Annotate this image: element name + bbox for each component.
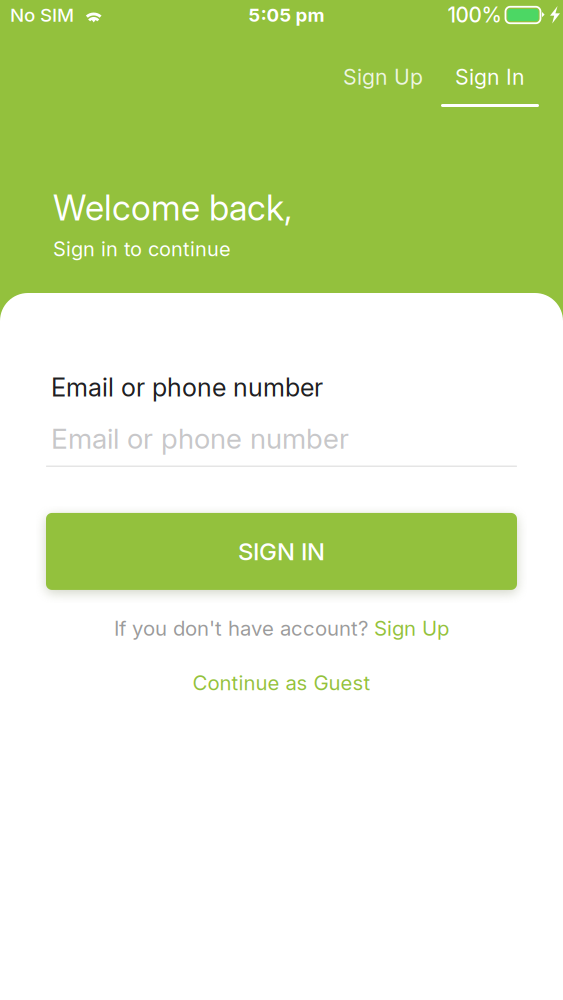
button[interactable]: Sign Up (334, 61, 432, 108)
button[interactable]: Continue as Guest (182, 665, 380, 701)
staticText: Sign Up (343, 64, 423, 90)
staticText: Continue as Guest (192, 671, 370, 695)
staticText: Welcome back, (53, 187, 292, 229)
button[interactable]: Sign Up (374, 616, 449, 641)
staticText: Email or phone number (51, 422, 349, 456)
staticText: Sign In (455, 64, 525, 90)
staticText: No SIM (10, 4, 74, 26)
staticText: If you don't have account? (114, 616, 374, 641)
staticText: Sign Up (374, 616, 449, 641)
staticText: 5:05 pm (248, 4, 324, 26)
button[interactable]: Sign In (441, 61, 539, 108)
staticText: 100% (447, 2, 501, 27)
button[interactable]: SIGN IN (46, 513, 517, 590)
staticText: Email or phone number (51, 372, 323, 403)
staticText: Sign in to continue (53, 237, 231, 261)
staticText: SIGN IN (238, 537, 325, 566)
